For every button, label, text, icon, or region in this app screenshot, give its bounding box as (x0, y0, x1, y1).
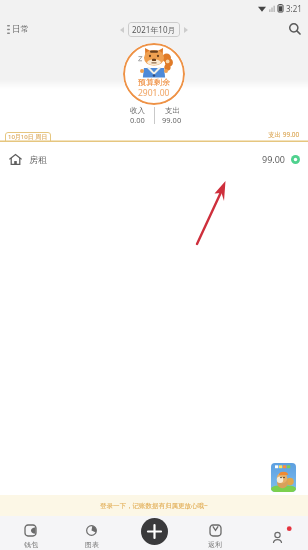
staticText: 预算剩余 (138, 77, 170, 87)
staticText: 钱包 (24, 540, 38, 549)
button[interactable]: 房租 (0, 144, 308, 174)
staticText: 日常 (12, 24, 29, 35)
staticText: 收入 (130, 106, 145, 115)
staticText: 图表 (85, 540, 99, 549)
staticText: 支出 99.00 (268, 130, 300, 139)
button[interactable]: Previous month (117, 23, 127, 37)
staticText: 99.00 (262, 153, 286, 165)
staticText: 0.00 (130, 115, 145, 125)
button[interactable]: 日常 (0, 21, 35, 38)
button[interactable]: Search (282, 18, 308, 40)
button[interactable]: 图表 (61, 516, 122, 550)
button[interactable]: 登录一下，记账数据有归属更放心哦~ (0, 495, 308, 516)
staticText: 10月10日 周日 (8, 133, 48, 141)
button[interactable]: 10月10日 周日 (5, 132, 51, 142)
button[interactable]: 我的 (246, 516, 308, 550)
staticText: 支出 (165, 106, 180, 115)
button[interactable]: 预算剩余 (123, 43, 185, 105)
staticText: 返利 (208, 540, 222, 549)
button[interactable]: 返利 (184, 516, 246, 550)
button[interactable]: 收入 (125, 106, 149, 125)
button[interactable]: Promotion (271, 463, 296, 492)
button[interactable]: 支出 (160, 106, 184, 125)
button[interactable]: Add record (141, 518, 168, 545)
staticText: 登录一下，记账数据有归属更放心哦~ (100, 501, 208, 510)
staticText: 2901.00 (138, 87, 170, 99)
staticText: 2021年10月 (132, 24, 176, 35)
staticText: 3:21 (286, 3, 302, 14)
button[interactable]: 钱包 (0, 516, 61, 550)
staticText: 99.00 (162, 115, 182, 125)
staticText: 房租 (29, 154, 47, 165)
button[interactable]: Next month (181, 23, 191, 37)
button[interactable]: 2021年10月 (128, 22, 180, 37)
